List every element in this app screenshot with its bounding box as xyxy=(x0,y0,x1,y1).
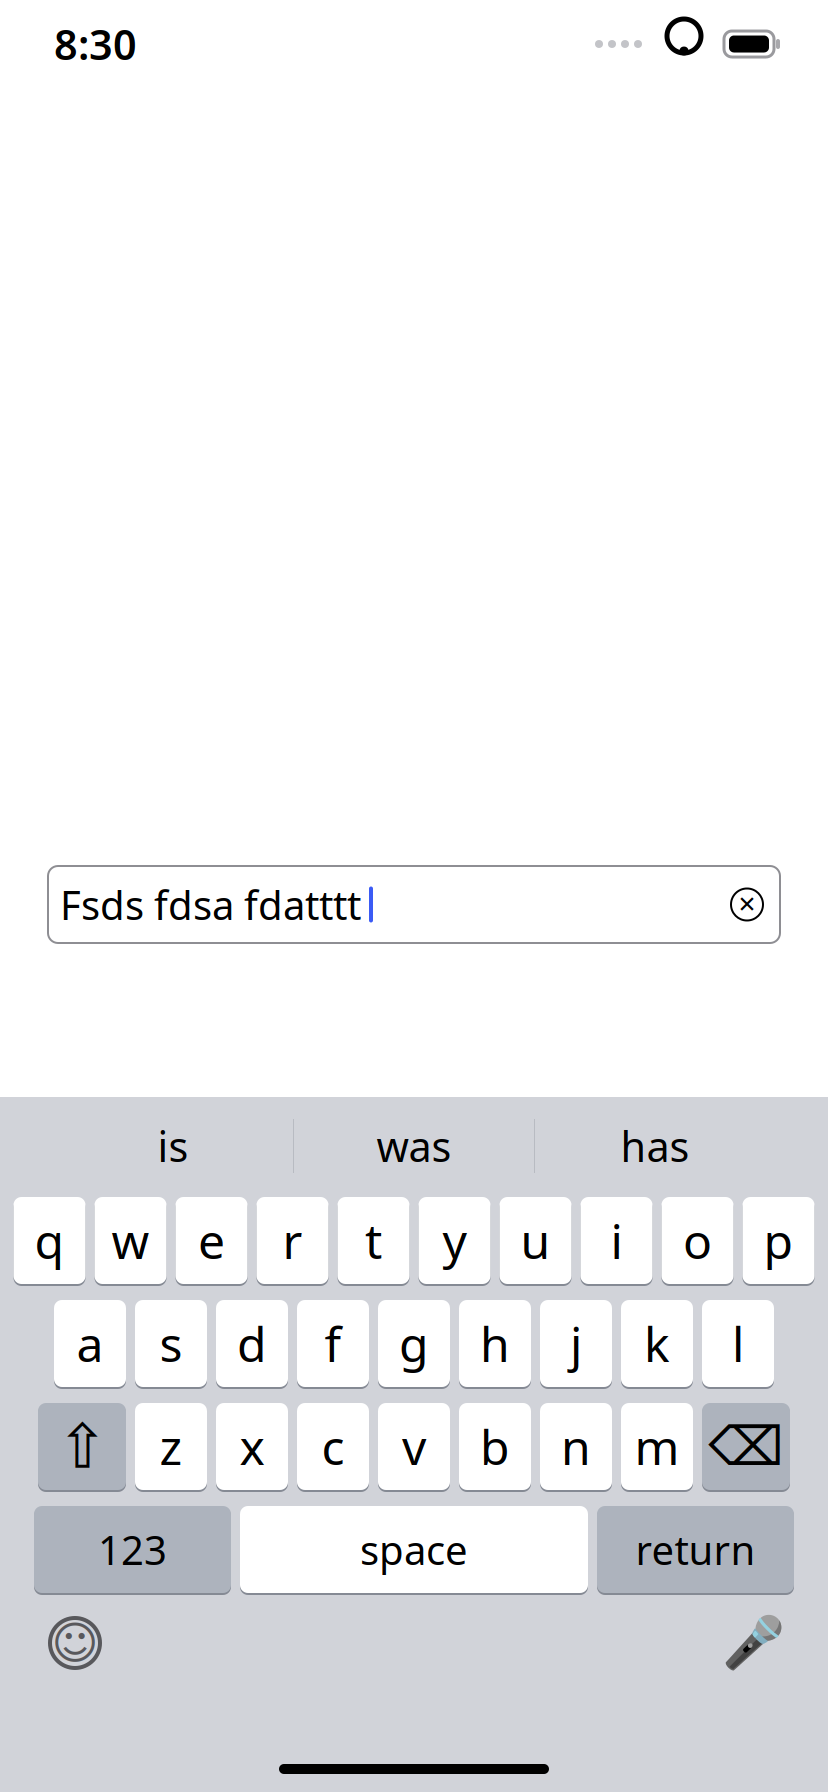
button[interactable]: h xyxy=(459,1298,531,1389)
staticText: s xyxy=(159,1312,182,1375)
staticText: 123 xyxy=(98,1523,167,1576)
staticText: b xyxy=(480,1415,510,1478)
button[interactable]: Shift xyxy=(38,1401,126,1492)
staticText: o xyxy=(683,1209,712,1272)
staticText: ⇧ xyxy=(56,1412,107,1481)
staticText: t xyxy=(365,1209,382,1272)
button[interactable]: return xyxy=(597,1504,794,1595)
staticText: r xyxy=(282,1209,302,1272)
button[interactable]: Dictation xyxy=(716,1606,790,1680)
button[interactable]: a xyxy=(54,1298,126,1389)
button[interactable]: u xyxy=(499,1195,571,1286)
staticText: ✕ xyxy=(737,892,756,917)
staticText: has xyxy=(620,1119,689,1173)
button[interactable]: 123 xyxy=(34,1504,231,1595)
button[interactable]: b xyxy=(459,1401,531,1492)
button[interactable]: d xyxy=(216,1298,288,1389)
staticText: ☺ xyxy=(51,1617,98,1669)
staticText: m xyxy=(634,1415,679,1478)
staticText: q xyxy=(34,1209,64,1272)
button[interactable]: w xyxy=(94,1195,166,1286)
staticText: g xyxy=(399,1312,429,1375)
staticText: 8:30 xyxy=(54,17,137,71)
button[interactable]: l xyxy=(702,1298,774,1389)
button[interactable]: space xyxy=(240,1504,588,1595)
staticText: j xyxy=(570,1312,582,1375)
staticText: i xyxy=(610,1209,622,1272)
button[interactable]: is xyxy=(53,1102,293,1190)
staticText: ⌫ xyxy=(708,1416,783,1477)
button[interactable]: g xyxy=(378,1298,450,1389)
staticText: d xyxy=(237,1312,267,1375)
button[interactable]: m xyxy=(621,1401,693,1492)
button[interactable]: was xyxy=(294,1102,534,1190)
staticText: l xyxy=(732,1312,744,1375)
button[interactable]: t xyxy=(337,1195,409,1286)
staticText: Fsds fdsa fdatttt xyxy=(60,878,361,931)
button[interactable]: i xyxy=(580,1195,652,1286)
button[interactable]: j xyxy=(540,1298,612,1389)
staticText: return xyxy=(635,1523,755,1576)
button[interactable]: k xyxy=(621,1298,693,1389)
button[interactable]: p xyxy=(742,1195,814,1286)
button[interactable]: c xyxy=(297,1401,369,1492)
button[interactable]: Clear text xyxy=(724,881,770,927)
staticText: p xyxy=(763,1209,793,1272)
staticText: k xyxy=(644,1312,670,1375)
button[interactable]: z xyxy=(135,1401,207,1492)
button[interactable]: e xyxy=(175,1195,247,1286)
staticText: w xyxy=(111,1209,149,1272)
staticText: h xyxy=(480,1312,510,1375)
button[interactable]: n xyxy=(540,1401,612,1492)
staticText: a xyxy=(76,1312,103,1375)
button[interactable]: has xyxy=(535,1102,775,1190)
staticText: f xyxy=(324,1312,341,1375)
button[interactable]: v xyxy=(378,1401,450,1492)
staticText: e xyxy=(198,1209,225,1272)
button[interactable]: f xyxy=(297,1298,369,1389)
staticText: was xyxy=(376,1119,451,1173)
button[interactable]: Emoji keyboard xyxy=(38,1606,112,1680)
staticText: z xyxy=(159,1415,182,1478)
staticText: u xyxy=(520,1209,550,1272)
button[interactable]: r xyxy=(256,1195,328,1286)
button[interactable]: x xyxy=(216,1401,288,1492)
button[interactable]: Delete xyxy=(702,1401,790,1492)
staticText: v xyxy=(402,1415,426,1478)
staticText: 🎤 xyxy=(721,1614,784,1672)
button[interactable]: q xyxy=(13,1195,85,1286)
staticText: is xyxy=(157,1119,188,1173)
staticText: c xyxy=(321,1415,344,1478)
staticText: y xyxy=(442,1209,466,1272)
staticText: n xyxy=(561,1415,591,1478)
button[interactable]: y xyxy=(418,1195,490,1286)
staticText: x xyxy=(239,1415,264,1478)
staticText: space xyxy=(360,1523,468,1576)
button[interactable]: o xyxy=(661,1195,733,1286)
button[interactable]: s xyxy=(135,1298,207,1389)
